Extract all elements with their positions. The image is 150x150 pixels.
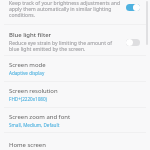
button[interactable]: Screen mode xyxy=(0,57,150,82)
staticText: Screen mode xyxy=(9,61,46,69)
button[interactable]: Home screen xyxy=(0,137,150,150)
staticText: Home screen xyxy=(9,141,46,149)
button[interactable]: Screen resolution xyxy=(0,83,150,108)
staticText: Small, Medium, Default xyxy=(9,122,60,128)
button[interactable]: Adaptive brightness xyxy=(126,3,140,11)
staticText: Screen resolution xyxy=(9,87,58,95)
staticText: Reduce eye strain by limiting the amount… xyxy=(9,40,113,47)
staticText: FHD+(2220x1080) xyxy=(9,96,47,102)
button[interactable]: Blue light filter toggle xyxy=(126,38,140,46)
staticText: Screen zoom and font xyxy=(9,113,71,121)
staticText: Blue light filter xyxy=(9,31,52,39)
staticText: apply them automatically in similar ligh… xyxy=(9,6,112,13)
button[interactable]: Blue light filter xyxy=(0,30,150,56)
staticText: conditions. xyxy=(9,12,36,19)
button[interactable]: Screen zoom and font xyxy=(0,109,150,134)
staticText: Keep track of your brightness adjustment… xyxy=(9,0,121,7)
staticText: blue light emitted by the screen. xyxy=(9,46,86,53)
staticText: Adaptive display xyxy=(9,70,45,76)
